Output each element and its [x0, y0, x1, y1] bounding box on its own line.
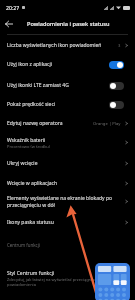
button[interactable]: Wskaźnik baterii	[0, 131, 135, 154]
button[interactable]: Ukryj wcięcie	[0, 154, 135, 173]
staticText: Styl Centrum funkcji	[7, 270, 55, 277]
staticText: Edytuj nazwę operatora	[7, 120, 63, 127]
staticText: Centrum funkcji	[7, 242, 40, 248]
staticText: Zdecyduj, jak łatwiej na wyświetlać prze…	[7, 277, 121, 288]
button[interactable]: Użyj ikon z aplikacji	[0, 55, 135, 74]
staticText: Użyj ikonki LTE zamiast 4G	[7, 82, 109, 89]
button[interactable]: Back	[0, 15, 17, 32]
staticText: Procentowo (w środku)	[7, 144, 51, 149]
staticText: Powiadomienia i pasek statusu	[27, 20, 110, 28]
staticText: Wcięcie w aplikacjach	[7, 180, 58, 187]
staticText: Orange | Play	[93, 121, 121, 127]
button[interactable]: Wcięcie w aplikacjach	[0, 174, 135, 193]
button[interactable]: Pokaż prędkość sieci	[0, 95, 135, 114]
staticText: Wskaźnik baterii	[7, 137, 46, 144]
button[interactable]: Styl Centrum funkcji	[0, 266, 135, 292]
button[interactable]: Ikony paska statusu	[0, 213, 135, 232]
button[interactable]: Liczba wyświetlanych ikon powiadomień	[0, 36, 135, 55]
button[interactable]: Elementy wyświetlane na ekranie blokady …	[0, 191, 135, 211]
button[interactable]: Użyj ikonki LTE zamiast 4G	[0, 76, 135, 95]
staticText: Ikony paska statusu	[7, 219, 54, 226]
button[interactable]: Edytuj nazwę operatora	[0, 114, 135, 133]
staticText: Elementy wyświetlane na ekranie blokady …	[7, 195, 121, 208]
staticText: 3	[118, 43, 121, 49]
staticText: 20:27	[6, 4, 20, 11]
staticText: Ukryj wcięcie	[7, 160, 38, 167]
staticText: Użyj ikon z aplikacji	[7, 61, 109, 68]
staticText: Liczba wyświetlanych ikon powiadomień	[7, 42, 102, 49]
staticText: Pokaż prędkość sieci	[7, 101, 109, 108]
